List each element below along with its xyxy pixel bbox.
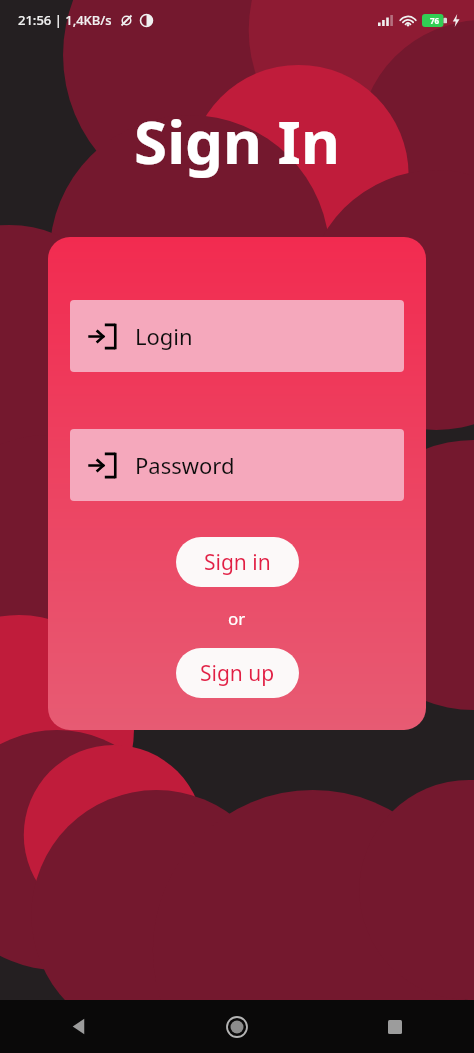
button[interactable]: Recents bbox=[316, 1000, 474, 1053]
staticText: Password bbox=[135, 450, 235, 480]
staticText: or bbox=[228, 607, 246, 630]
staticText: 21:56 | 1,4KB/s bbox=[18, 11, 112, 29]
staticText: Sign In bbox=[0, 100, 474, 182]
staticText: Sign up bbox=[200, 659, 275, 688]
button[interactable]: Login bbox=[70, 300, 404, 372]
button[interactable]: Password bbox=[70, 429, 404, 501]
staticText: Sign in bbox=[204, 548, 271, 577]
button[interactable]: Sign in bbox=[176, 537, 299, 587]
staticText: Login bbox=[135, 321, 193, 351]
staticText: 76 bbox=[430, 15, 440, 26]
button[interactable]: Home bbox=[158, 1000, 316, 1053]
button[interactable]: Sign up bbox=[176, 648, 299, 698]
button[interactable]: Back bbox=[0, 1000, 158, 1053]
